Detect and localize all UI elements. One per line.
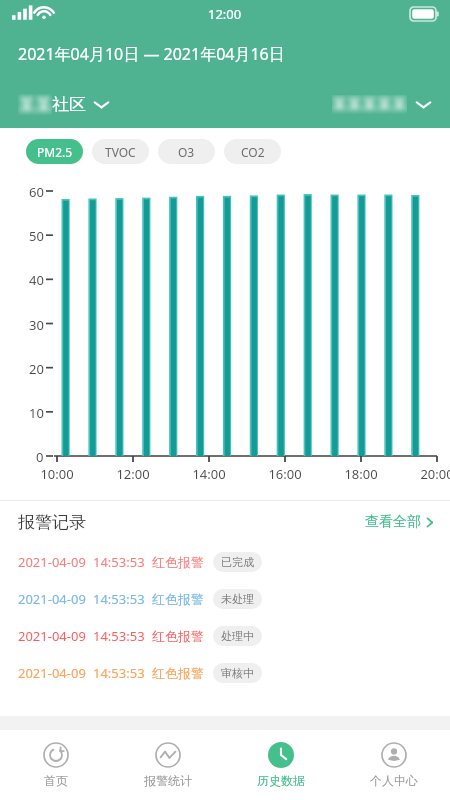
staticText: 已完成 bbox=[221, 555, 254, 569]
staticText: 20 bbox=[29, 360, 44, 378]
button[interactable]: 历史数据 bbox=[224, 730, 337, 800]
button[interactable]: 2021-04-09 bbox=[0, 543, 450, 580]
other: 首页 bbox=[43, 742, 69, 768]
staticText: 16:00 bbox=[268, 465, 302, 483]
staticText: 个人中心 bbox=[370, 773, 418, 788]
other: 个人中心 bbox=[381, 742, 407, 768]
staticText: 2021-04-09 bbox=[18, 553, 86, 571]
staticText: 14:00 bbox=[192, 465, 226, 483]
button[interactable]: 某某某某某 bbox=[332, 95, 432, 114]
staticText: 查看全部 bbox=[365, 513, 421, 531]
staticText: 14:53:53 bbox=[93, 664, 145, 682]
staticText: 报警记录 bbox=[18, 512, 86, 533]
staticText: 首页 bbox=[44, 773, 68, 788]
staticText: 10:00 bbox=[40, 465, 74, 483]
button[interactable]: O3 bbox=[158, 139, 215, 164]
button[interactable]: PM2.5 bbox=[26, 139, 83, 164]
staticText: 2021年04月10日 — 2021年04月16日 bbox=[18, 43, 285, 65]
button[interactable]: TVOC bbox=[92, 139, 149, 164]
staticText: 40 bbox=[29, 271, 44, 289]
staticText: 2021-04-09 bbox=[18, 590, 86, 608]
staticText: 60 bbox=[29, 183, 44, 201]
button[interactable]: 2021-04-09 bbox=[0, 580, 450, 617]
staticText: 社区 bbox=[52, 94, 86, 115]
staticText: 红色报警 bbox=[152, 665, 204, 681]
staticText: 报警统计 bbox=[144, 773, 192, 788]
button[interactable]: 某某 bbox=[18, 94, 110, 115]
other: 历史数据 bbox=[268, 742, 294, 768]
staticText: 14:53:53 bbox=[93, 553, 145, 571]
staticText: 红色报警 bbox=[152, 554, 204, 570]
staticText: 12:00 bbox=[208, 5, 242, 23]
staticText: 红色报警 bbox=[152, 628, 204, 644]
staticText: 红色报警 bbox=[152, 591, 204, 607]
staticText: O3 bbox=[178, 144, 195, 160]
staticText: 12:00 bbox=[116, 465, 150, 483]
staticText: PM2.5 bbox=[37, 144, 73, 160]
button[interactable]: 2021-04-09 bbox=[0, 617, 450, 654]
staticText: 0 bbox=[36, 448, 44, 466]
staticText: 14:53:53 bbox=[93, 590, 145, 608]
other: 报警统计 bbox=[155, 742, 181, 768]
staticText: 20:00 bbox=[420, 465, 450, 483]
button[interactable]: 首页 bbox=[0, 730, 112, 800]
staticText: 处理中 bbox=[221, 629, 254, 643]
staticText: CO2 bbox=[241, 144, 265, 160]
button[interactable]: 查看全部 bbox=[365, 513, 435, 531]
staticText: 10 bbox=[29, 404, 44, 422]
staticText: 审核中 bbox=[221, 666, 254, 680]
button[interactable]: 个人中心 bbox=[337, 730, 450, 800]
staticText: 18:00 bbox=[344, 465, 378, 483]
staticText: 14:53:53 bbox=[93, 627, 145, 645]
staticText: 30 bbox=[29, 316, 44, 334]
staticText: 未处理 bbox=[221, 592, 254, 606]
button[interactable]: CO2 bbox=[224, 139, 281, 164]
button[interactable]: 2021-04-09 bbox=[0, 654, 450, 691]
staticText: 某某某某某 bbox=[332, 95, 407, 114]
staticText: 2021-04-09 bbox=[18, 664, 86, 682]
staticText: TVOC bbox=[105, 144, 136, 160]
staticText: 50 bbox=[29, 227, 44, 245]
button[interactable]: 报警统计 bbox=[112, 730, 224, 800]
button[interactable]: 2021年04月10日 — 2021年04月16日 bbox=[0, 28, 450, 80]
staticText: 2021-04-09 bbox=[18, 627, 86, 645]
staticText: 历史数据 bbox=[257, 773, 305, 788]
staticText: 某某 bbox=[18, 94, 52, 115]
